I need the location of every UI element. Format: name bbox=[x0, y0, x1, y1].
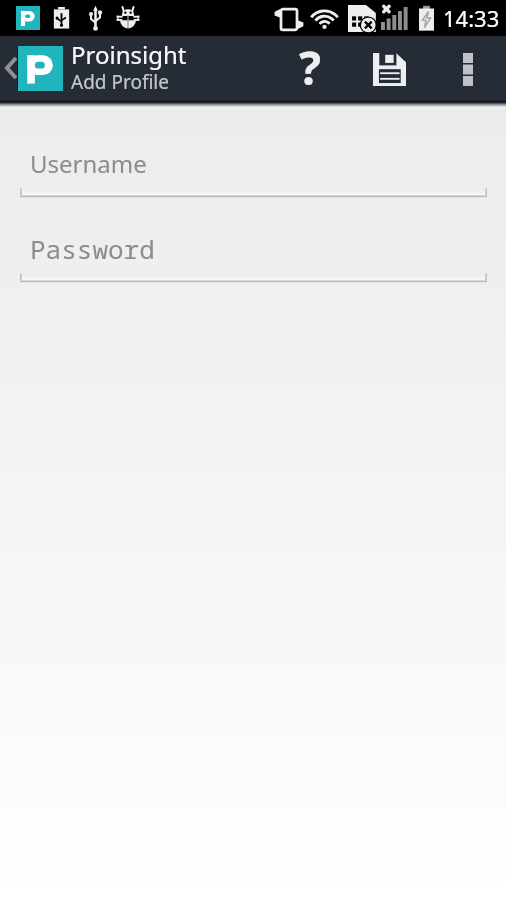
button[interactable]: Save bbox=[356, 36, 423, 100]
staticText: Add Profile bbox=[71, 69, 169, 95]
button[interactable]: Password bbox=[30, 231, 155, 266]
staticText: 14:33 bbox=[443, 3, 500, 33]
button[interactable]: Username bbox=[30, 147, 147, 180]
button[interactable]: Help bbox=[281, 36, 339, 100]
staticText: ? bbox=[299, 36, 321, 99]
button[interactable]: More options bbox=[443, 36, 492, 100]
other: Navigate up bbox=[7, 58, 16, 78]
staticText: Proinsight bbox=[71, 38, 187, 71]
button[interactable]: Navigate up bbox=[0, 36, 187, 100]
